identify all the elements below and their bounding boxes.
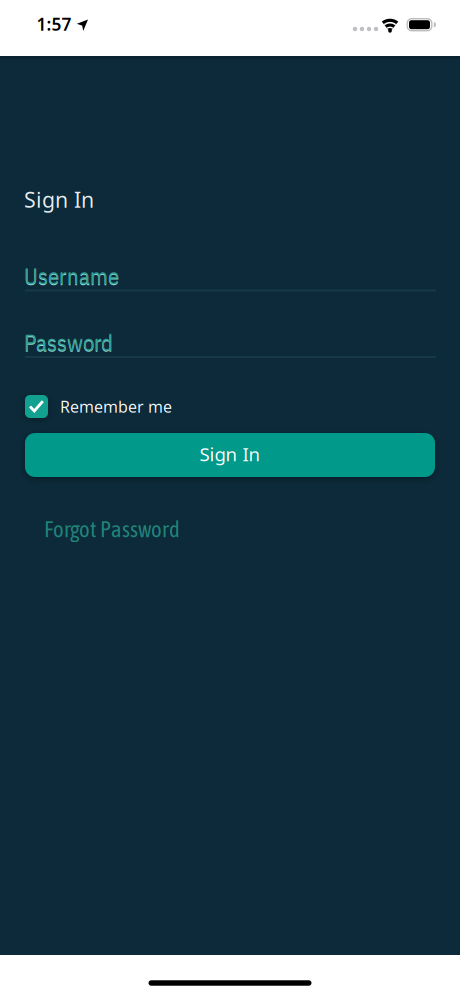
button[interactable]: Username — [25, 264, 436, 291]
staticText: Password — [24, 328, 113, 358]
button[interactable]: Forgot Password — [44, 516, 284, 542]
staticText: Username — [24, 261, 119, 290]
staticText: Forgot Password — [44, 516, 180, 542]
staticText: Sign In — [24, 185, 94, 214]
staticText: Sign In — [199, 442, 260, 466]
staticText: 1:57 — [36, 12, 71, 35]
staticText: Password — [24, 327, 113, 357]
staticText: Remember me — [60, 396, 172, 417]
button[interactable]: Remember me — [25, 391, 185, 421]
button[interactable]: Sign In — [25, 433, 435, 477]
button[interactable]: Password — [25, 330, 436, 357]
staticText: Username — [24, 262, 119, 291]
